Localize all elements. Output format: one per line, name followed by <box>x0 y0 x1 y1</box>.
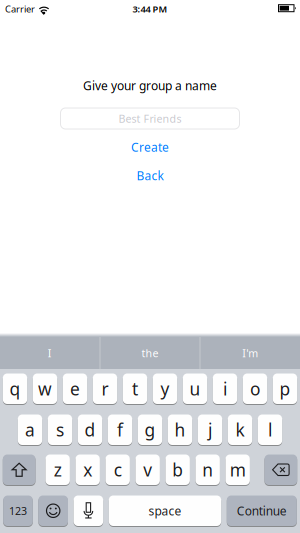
staticText: h <box>174 418 185 441</box>
staticText: c <box>114 458 122 481</box>
staticText: I <box>48 346 52 360</box>
button[interactable]: Back <box>136 167 163 183</box>
button[interactable]: Create <box>131 139 169 155</box>
button[interactable]: n <box>195 454 220 485</box>
button[interactable]: Continue <box>227 495 297 526</box>
button[interactable]: p <box>273 373 297 404</box>
staticText: a <box>25 418 35 441</box>
staticText: t <box>132 377 138 400</box>
button[interactable]: c <box>105 454 130 485</box>
button[interactable]: 123 <box>3 495 33 526</box>
button[interactable]: h <box>168 414 192 445</box>
button[interactable] <box>264 454 297 485</box>
staticText: space <box>148 503 181 519</box>
staticText: k <box>235 418 244 441</box>
button[interactable]: d <box>78 414 102 445</box>
staticText: j <box>208 418 212 441</box>
button[interactable]: b <box>165 454 190 485</box>
button[interactable]: o <box>243 373 267 404</box>
staticText: s <box>56 418 64 441</box>
button[interactable]: v <box>135 454 160 485</box>
button[interactable]: r <box>93 373 117 404</box>
staticText: l <box>268 418 272 441</box>
button[interactable]: I'm <box>200 337 300 369</box>
button[interactable]: j <box>198 414 222 445</box>
staticText: r <box>101 377 108 400</box>
button[interactable]: m <box>225 454 250 485</box>
staticText: Back <box>136 167 163 183</box>
staticText: 123 <box>9 504 27 518</box>
staticText: e <box>70 377 80 400</box>
staticText: x <box>83 458 92 481</box>
staticText: q <box>9 377 20 400</box>
staticText: u <box>189 377 200 400</box>
button[interactable] <box>38 495 68 526</box>
staticText: y <box>160 377 169 400</box>
staticText: Continue <box>237 503 287 519</box>
button[interactable]: s <box>48 414 72 445</box>
button[interactable]: u <box>183 373 207 404</box>
staticText: g <box>144 418 155 441</box>
button[interactable]: e <box>63 373 87 404</box>
staticText: I'm <box>242 346 258 360</box>
staticText: v <box>143 458 152 481</box>
button[interactable]: space <box>109 495 221 526</box>
button[interactable]: f <box>108 414 132 445</box>
staticText: p <box>279 377 290 400</box>
staticText: z <box>54 458 62 481</box>
staticText: d <box>84 418 95 441</box>
button[interactable]: z <box>45 454 70 485</box>
button[interactable]: k <box>228 414 252 445</box>
button[interactable]: l <box>258 414 282 445</box>
staticText: i <box>223 377 227 400</box>
staticText: w <box>38 377 52 400</box>
button[interactable]: w <box>33 373 57 404</box>
button[interactable] <box>3 454 35 485</box>
button[interactable]: q <box>3 373 27 404</box>
button[interactable]: t <box>123 373 147 404</box>
staticText: m <box>230 458 246 481</box>
staticText: b <box>172 458 183 481</box>
staticText: the <box>141 346 158 360</box>
button[interactable]: y <box>153 373 177 404</box>
staticText: o <box>250 377 260 400</box>
button[interactable]: the <box>100 337 199 369</box>
button[interactable]: g <box>138 414 162 445</box>
staticText: n <box>202 458 213 481</box>
button[interactable]: i <box>213 373 237 404</box>
button[interactable] <box>74 495 103 526</box>
staticText: Carrier <box>5 3 35 15</box>
button[interactable]: I <box>0 337 99 369</box>
staticText: f <box>117 418 123 441</box>
staticText: 3:44 PM <box>132 3 167 15</box>
staticText: Best Friends <box>118 111 181 126</box>
staticText: Create <box>131 139 169 155</box>
button[interactable]: x <box>75 454 100 485</box>
staticText: Give your group a name <box>83 77 217 93</box>
button[interactable]: a <box>18 414 42 445</box>
button[interactable]: Best Friends <box>60 107 240 129</box>
